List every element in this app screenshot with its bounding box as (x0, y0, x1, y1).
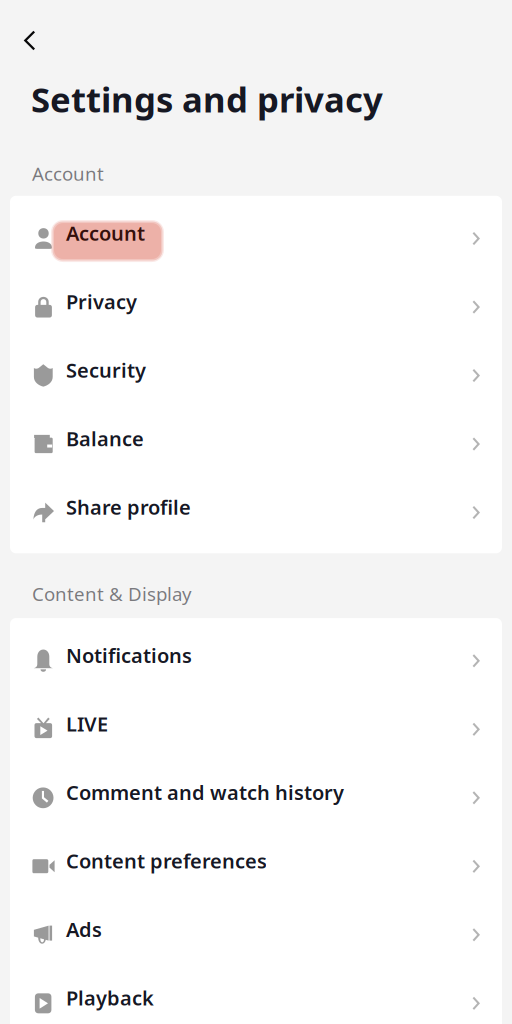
button[interactable]: Balance (10, 404, 502, 473)
button[interactable]: Comment and watch history (10, 758, 502, 827)
staticText: Settings and privacy (31, 76, 383, 122)
staticText: Privacy (66, 288, 137, 315)
button[interactable]: Share profile (10, 473, 502, 541)
button[interactable]: Back (0, 0, 76, 77)
button[interactable]: Account (10, 199, 502, 267)
staticText: Ads (66, 916, 102, 943)
staticText: Playback (66, 985, 154, 1011)
button[interactable]: Playback (10, 964, 502, 1024)
button[interactable]: Notifications (10, 621, 502, 690)
staticText: Notifications (66, 642, 192, 669)
button[interactable]: Ads (10, 895, 502, 964)
staticText: Account (66, 220, 145, 246)
staticText: Content preferences (66, 848, 267, 874)
staticText: Content & Display (32, 581, 192, 606)
staticText: Balance (66, 425, 144, 452)
button[interactable]: Security (10, 336, 502, 404)
staticText: Security (66, 357, 146, 383)
staticText: LIVE (66, 711, 108, 737)
staticText: Account (32, 161, 104, 186)
button[interactable]: Privacy (10, 267, 502, 336)
staticText: Comment and watch history (66, 779, 344, 806)
button[interactable]: Content preferences (10, 827, 502, 895)
staticText: Share profile (66, 494, 191, 520)
button[interactable]: LIVE (10, 690, 502, 758)
